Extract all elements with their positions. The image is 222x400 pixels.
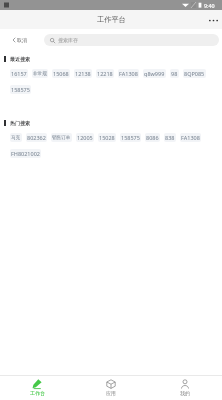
staticText: 马克 [11, 135, 21, 141]
staticText: 工作台 [30, 390, 45, 396]
button[interactable]: 16157 [10, 69, 28, 78]
staticText: FH8021002 [11, 150, 40, 157]
staticText: 158575 [11, 86, 30, 93]
button[interactable]: 马克 [10, 133, 22, 142]
button[interactable]: FA1308 [180, 133, 201, 142]
staticText: 非常规 [33, 71, 47, 77]
button[interactable]: FH8021002 [10, 149, 41, 158]
button[interactable]: FA1308 [118, 69, 139, 78]
staticText: 销售订单 [52, 135, 71, 141]
staticText: 热门搜索 [10, 120, 30, 126]
staticText: q8w999 [144, 70, 165, 77]
button[interactable]: 12218 [96, 69, 114, 78]
staticText: 98 [171, 70, 178, 77]
staticText: 158575 [121, 134, 140, 141]
staticText: 16157 [11, 70, 27, 77]
button[interactable]: 12138 [74, 69, 92, 78]
staticText: FA1308 [119, 70, 138, 77]
button[interactable]: 搜索库存 [44, 34, 219, 46]
staticText: 802362 [27, 134, 46, 141]
staticText: 8QP085 [184, 70, 205, 77]
staticText: 15068 [53, 70, 69, 77]
staticText: 9:40 [204, 2, 215, 9]
staticText: 工作平台 [97, 15, 126, 24]
button[interactable]: 销售订单 [51, 133, 72, 142]
button[interactable]: 802362 [26, 133, 47, 142]
button[interactable]: 我的 [148, 376, 222, 400]
staticText: 15028 [99, 134, 115, 141]
staticText: 最近搜索 [10, 56, 30, 62]
button[interactable]: 838 [164, 133, 176, 142]
staticText: 取消 [17, 37, 27, 43]
button[interactable]: 158575 [120, 133, 141, 142]
staticText: FA1308 [181, 134, 200, 141]
button[interactable]: 98 [170, 69, 179, 78]
staticText: 应用 [106, 390, 116, 396]
button[interactable]: 12005 [76, 133, 94, 142]
staticText: 我的 [180, 390, 190, 396]
button[interactable]: 15028 [98, 133, 116, 142]
button[interactable]: 工作台 [0, 376, 74, 400]
button[interactable]: 取消 [0, 37, 44, 43]
button[interactable]: 158575 [10, 85, 31, 94]
button[interactable]: 应用 [74, 376, 148, 400]
staticText: 8086 [146, 134, 159, 141]
button[interactable]: More options [204, 11, 222, 29]
button[interactable]: 非常规 [32, 69, 48, 78]
staticText: 12138 [75, 70, 91, 77]
staticText: 12218 [97, 70, 113, 77]
button[interactable]: 8QP085 [183, 69, 206, 78]
staticText: 838 [165, 134, 175, 141]
staticText: 搜索库存 [58, 37, 78, 43]
button[interactable]: q8w999 [143, 69, 166, 78]
button[interactable]: 8086 [145, 133, 160, 142]
button[interactable]: 15068 [52, 69, 70, 78]
staticText: 12005 [77, 134, 93, 141]
